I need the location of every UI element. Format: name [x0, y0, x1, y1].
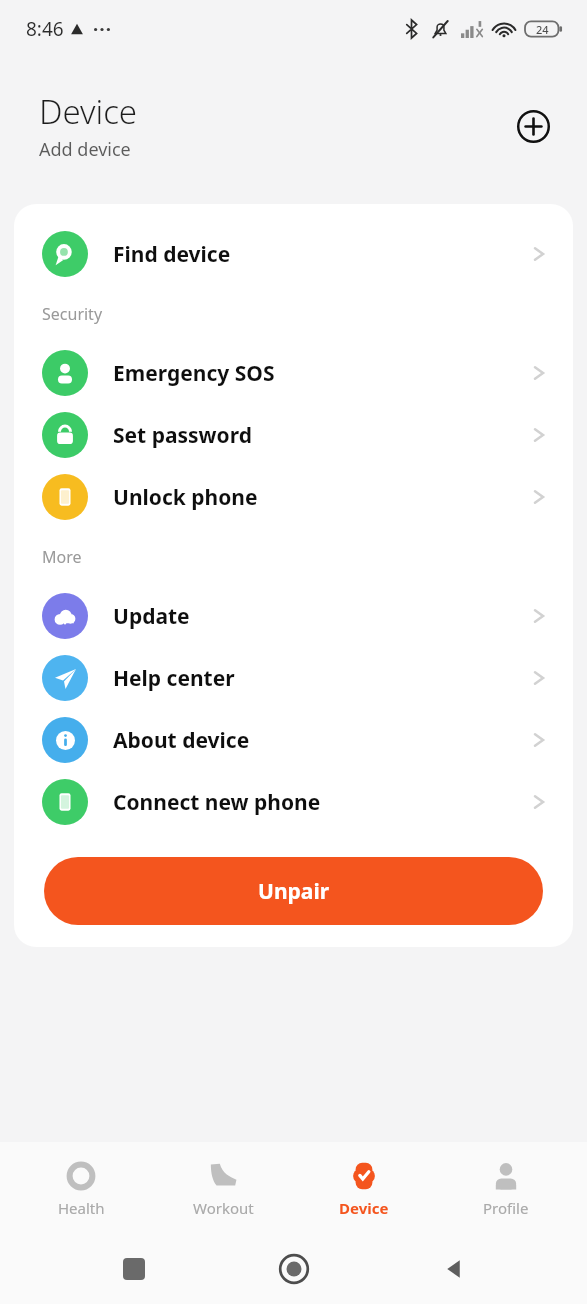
staticText: Add device	[39, 137, 131, 162]
button[interactable]: Profile	[446, 1153, 566, 1224]
button[interactable]: About device	[14, 709, 573, 771]
button[interactable]: Workout	[163, 1153, 283, 1224]
staticText: Device	[339, 1198, 389, 1218]
staticText: Security	[42, 303, 103, 325]
button[interactable]: Help center	[14, 647, 573, 709]
button[interactable]: Device	[304, 1153, 424, 1224]
button[interactable]: Health	[21, 1153, 141, 1224]
button[interactable]: Find device	[14, 223, 573, 285]
staticText: About device	[113, 726, 250, 755]
staticText: Device	[39, 89, 138, 134]
staticText: Unpair	[258, 877, 330, 906]
button[interactable]: Back	[427, 1243, 479, 1295]
button[interactable]: Unlock phone	[14, 466, 573, 528]
staticText: Unlock phone	[113, 483, 258, 512]
staticText: 24	[536, 22, 549, 37]
button[interactable]: Add device	[509, 102, 557, 150]
staticText: Connect new phone	[113, 788, 321, 817]
staticText: Workout	[193, 1198, 254, 1218]
button[interactable]: Recents	[108, 1243, 160, 1295]
staticText: Find device	[113, 240, 231, 269]
staticText: Emergency SOS	[113, 359, 275, 388]
staticText: Health	[58, 1198, 105, 1218]
button[interactable]: Emergency SOS	[14, 342, 573, 404]
button[interactable]: Home	[268, 1243, 320, 1295]
staticText: Update	[113, 602, 190, 631]
button[interactable]: Update	[14, 585, 573, 647]
button[interactable]: Unpair	[44, 857, 543, 925]
staticText: More	[42, 546, 82, 568]
staticText: 8:46	[26, 16, 64, 42]
button[interactable]: Connect new phone	[14, 771, 573, 833]
staticText: Profile	[483, 1198, 529, 1218]
staticText: Help center	[113, 664, 235, 693]
button[interactable]: Set password	[14, 404, 573, 466]
staticText: Set password	[113, 421, 252, 450]
